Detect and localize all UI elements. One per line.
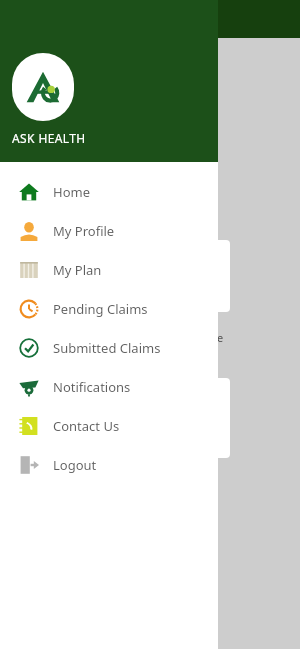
button[interactable]: Home <box>0 172 218 211</box>
staticText: Profile <box>190 330 224 345</box>
staticText: Home <box>53 183 90 201</box>
staticText: My Plan <box>53 261 102 279</box>
button[interactable]: Pending Claims <box>0 289 218 328</box>
staticText: My Profile <box>53 222 115 240</box>
staticText: Submitted Claims <box>53 339 161 357</box>
staticText: Notifications <box>53 378 131 396</box>
button[interactable]: Notifications <box>0 367 218 406</box>
button[interactable]: My Profile <box>0 211 218 250</box>
staticText: ASK HEALTH <box>12 130 86 146</box>
button[interactable]: Logout <box>0 445 218 484</box>
button[interactable]: Contact Us <box>0 406 218 445</box>
staticText: Contact Us <box>53 417 120 435</box>
staticText: Pending Claims <box>53 300 148 318</box>
button[interactable]: Submitted Claims <box>0 328 218 367</box>
button[interactable]: My Plan <box>0 250 218 289</box>
staticText: Logout <box>53 456 97 474</box>
